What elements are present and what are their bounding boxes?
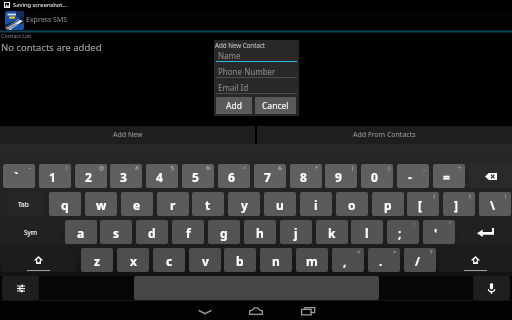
staticText: k xyxy=(328,225,336,241)
button[interactable]: x xyxy=(117,248,149,272)
button[interactable]: % xyxy=(182,164,214,188)
button[interactable]: * xyxy=(290,164,322,188)
button[interactable]: ? xyxy=(404,248,436,272)
staticText: & xyxy=(278,164,283,171)
staticText: Add xyxy=(226,100,242,112)
button[interactable]: r xyxy=(157,192,189,216)
button[interactable]: Phone Number xyxy=(217,66,296,77)
button[interactable]: z xyxy=(81,248,113,272)
staticText: ! xyxy=(66,164,68,171)
button[interactable]: a xyxy=(65,220,97,244)
button[interactable]: Tab xyxy=(1,192,45,216)
staticText: ] xyxy=(454,197,458,213)
button[interactable]: j xyxy=(280,220,312,244)
staticText: ; xyxy=(398,225,402,241)
staticText: ? xyxy=(430,248,433,255)
button[interactable]: Hide keyboard xyxy=(189,300,221,320)
staticText: l xyxy=(365,225,369,241)
button[interactable]: } xyxy=(443,192,475,216)
staticText: 4 xyxy=(156,169,163,185)
staticText: ` xyxy=(14,169,19,185)
staticText: q xyxy=(61,197,69,213)
button[interactable]: n xyxy=(260,248,292,272)
button[interactable]: Name xyxy=(217,50,296,61)
button[interactable]: ^ xyxy=(218,164,250,188)
staticText: 1 xyxy=(49,169,56,185)
staticText: @ xyxy=(99,164,104,171)
button[interactable]: Cancel xyxy=(255,97,296,114)
button[interactable]: v xyxy=(189,248,221,272)
button[interactable]: + xyxy=(433,164,465,188)
button[interactable]: " xyxy=(423,220,455,244)
staticText: 8 xyxy=(300,169,307,185)
button[interactable]: $ xyxy=(146,164,178,188)
staticText: 2 xyxy=(85,169,92,185)
button[interactable]: m xyxy=(296,248,328,272)
staticText: v xyxy=(202,253,209,269)
button[interactable]: ! xyxy=(39,164,71,188)
button[interactable]: _ xyxy=(397,164,429,188)
button[interactable]: Keyboard settings xyxy=(2,276,39,300)
button[interactable]: g xyxy=(208,220,240,244)
button[interactable]: @ xyxy=(75,164,107,188)
staticText: [ xyxy=(418,197,422,213)
staticText: Email Id xyxy=(218,82,249,93)
button[interactable]: w xyxy=(85,192,117,216)
staticText: m xyxy=(306,253,318,269)
button[interactable]: | xyxy=(479,192,511,216)
button[interactable]: y xyxy=(228,192,260,216)
button[interactable]: Sym xyxy=(1,220,60,244)
button[interactable]: > xyxy=(368,248,400,272)
staticText: # xyxy=(135,164,139,171)
staticText: 5 xyxy=(192,169,199,185)
button[interactable]: o xyxy=(336,192,368,216)
button[interactable]: & xyxy=(254,164,286,188)
button[interactable]: e xyxy=(121,192,153,216)
staticText: 6 xyxy=(228,169,235,185)
button[interactable]: bksp xyxy=(469,164,512,188)
staticText: c xyxy=(166,253,173,269)
button[interactable]: c xyxy=(153,248,185,272)
button[interactable]: shift xyxy=(439,248,512,272)
button[interactable]: l xyxy=(351,220,383,244)
button[interactable]: : xyxy=(387,220,419,244)
staticText: + xyxy=(458,164,462,171)
button[interactable]: # xyxy=(110,164,142,188)
button[interactable]: k xyxy=(316,220,348,244)
button[interactable]: h xyxy=(244,220,276,244)
button[interactable]: Recent apps xyxy=(292,300,324,320)
button[interactable]: i xyxy=(300,192,332,216)
button[interactable]: < xyxy=(332,248,364,272)
staticText: ( xyxy=(352,164,354,171)
staticText: } xyxy=(469,192,472,199)
button[interactable]: ~ xyxy=(3,164,35,188)
button[interactable]: Email Id xyxy=(217,82,296,93)
staticText: \ xyxy=(490,197,495,213)
button[interactable]: f xyxy=(172,220,204,244)
button[interactable]: shift xyxy=(1,248,76,272)
button[interactable]: u xyxy=(264,192,296,216)
button[interactable]: enter xyxy=(459,220,512,244)
button[interactable]: Voice input xyxy=(473,276,510,300)
button[interactable]: s xyxy=(100,220,132,244)
button[interactable]: b xyxy=(224,248,256,272)
staticText: Phone Number xyxy=(218,66,276,77)
staticText: u xyxy=(276,197,284,213)
button[interactable]: ) xyxy=(361,164,393,188)
button[interactable]: ( xyxy=(325,164,357,188)
button[interactable]: t xyxy=(192,192,224,216)
staticText: . xyxy=(379,253,383,269)
button[interactable]: Home xyxy=(240,300,272,320)
staticText: 0 xyxy=(371,169,378,185)
staticText: Add From Contacts xyxy=(353,130,416,140)
button[interactable]: q xyxy=(49,192,81,216)
button[interactable]: Add New xyxy=(0,126,255,144)
button[interactable]: Add xyxy=(216,97,252,114)
button[interactable]: d xyxy=(136,220,168,244)
button[interactable]: { xyxy=(407,192,439,216)
button[interactable]: p xyxy=(372,192,404,216)
staticText: - xyxy=(408,169,412,185)
button[interactable]: Add From Contacts xyxy=(257,126,512,144)
staticText: i xyxy=(314,197,318,213)
